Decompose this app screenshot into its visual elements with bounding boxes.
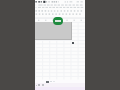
button[interactable]	[35, 0, 85, 22]
button[interactable]	[35, 22, 72, 40]
button[interactable]: Selection tooltip	[53, 17, 63, 25]
